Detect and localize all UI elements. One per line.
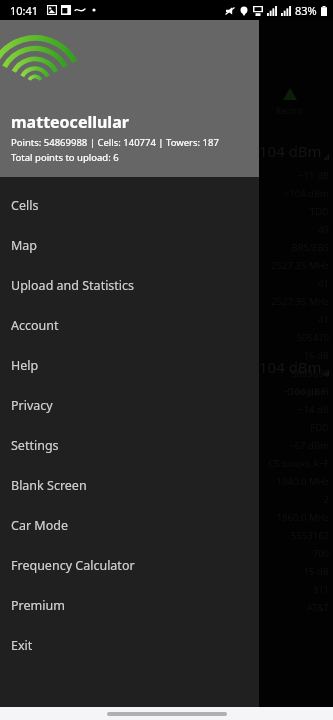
- staticText: 83%: [295, 3, 317, 18]
- staticText: Premium: [11, 597, 65, 614]
- staticText: Total points to upload: 6: [11, 151, 119, 164]
- staticText: 104 dBm: [259, 357, 322, 377]
- button[interactable]: Account: [0, 305, 259, 345]
- staticText: Privacy: [11, 397, 53, 414]
- staticText: 104 dBm: [259, 141, 322, 161]
- button[interactable]: Upload and Statistics: [0, 265, 259, 305]
- staticText: Blank Screen: [11, 477, 87, 494]
- button[interactable]: Map: [0, 225, 259, 265]
- staticText: Map: [11, 237, 38, 254]
- staticText: Points: 54869988 | Cells: 140774 | Tower…: [11, 136, 219, 149]
- button[interactable]: Privacy: [0, 385, 259, 425]
- staticText: Account: [11, 317, 59, 334]
- button[interactable]: Cells: [0, 185, 259, 225]
- button[interactable]: Frequency Calculator: [0, 545, 259, 585]
- button[interactable]: Blank Screen: [0, 465, 259, 505]
- staticText: Exit: [11, 637, 33, 654]
- staticText: 10:41: [10, 3, 39, 18]
- button[interactable]: matteocellular: [0, 0, 259, 177]
- button[interactable]: Premium: [0, 585, 259, 625]
- staticText: −104 dBm: [259, 385, 329, 398]
- button[interactable]: Car Mode: [0, 505, 259, 545]
- button[interactable]: Help: [0, 345, 259, 385]
- staticText: Settings: [11, 437, 59, 454]
- button[interactable]: Record: [276, 88, 303, 116]
- staticText: 5693696: [259, 367, 329, 380]
- button[interactable]: Settings: [0, 425, 259, 465]
- staticText: Help: [11, 357, 39, 374]
- button[interactable]: Exit: [0, 625, 259, 665]
- staticText: matteocellular: [11, 111, 129, 133]
- staticText: Cells: [11, 197, 39, 214]
- staticText: Google Fi: [259, 385, 329, 398]
- staticText: Frequency Calculator: [11, 557, 135, 574]
- staticText: Car Mode: [11, 517, 68, 534]
- staticText: Upload and Statistics: [11, 277, 135, 294]
